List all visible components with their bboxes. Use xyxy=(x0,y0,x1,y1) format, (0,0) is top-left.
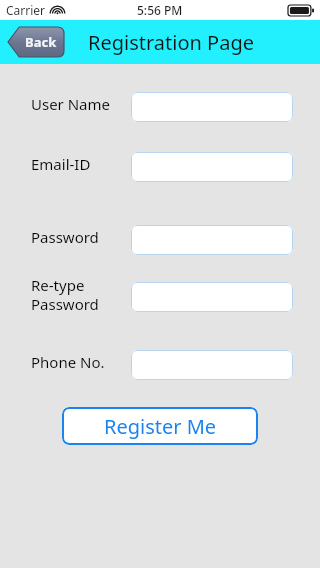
staticText: User Name xyxy=(31,94,111,114)
button[interactable]: Back xyxy=(8,27,64,57)
staticText: Re-type Password xyxy=(31,275,99,314)
staticText: Phone No. xyxy=(31,352,105,372)
button[interactable]: User Name xyxy=(131,92,293,122)
staticText: Carrier xyxy=(6,2,46,18)
button[interactable]: Password xyxy=(131,225,293,255)
staticText: 5:56 PM xyxy=(137,2,183,18)
staticText: Back xyxy=(25,33,57,51)
staticText: Register Me xyxy=(104,413,217,440)
button[interactable]: Phone No. xyxy=(131,350,293,380)
button[interactable]: Re-type Password xyxy=(131,282,293,312)
staticText: Registration Page xyxy=(88,29,254,56)
staticText: Password xyxy=(31,227,99,247)
button[interactable]: Register Me xyxy=(62,407,258,445)
staticText: Email-ID xyxy=(31,154,91,174)
button[interactable]: Email-ID xyxy=(131,152,293,182)
